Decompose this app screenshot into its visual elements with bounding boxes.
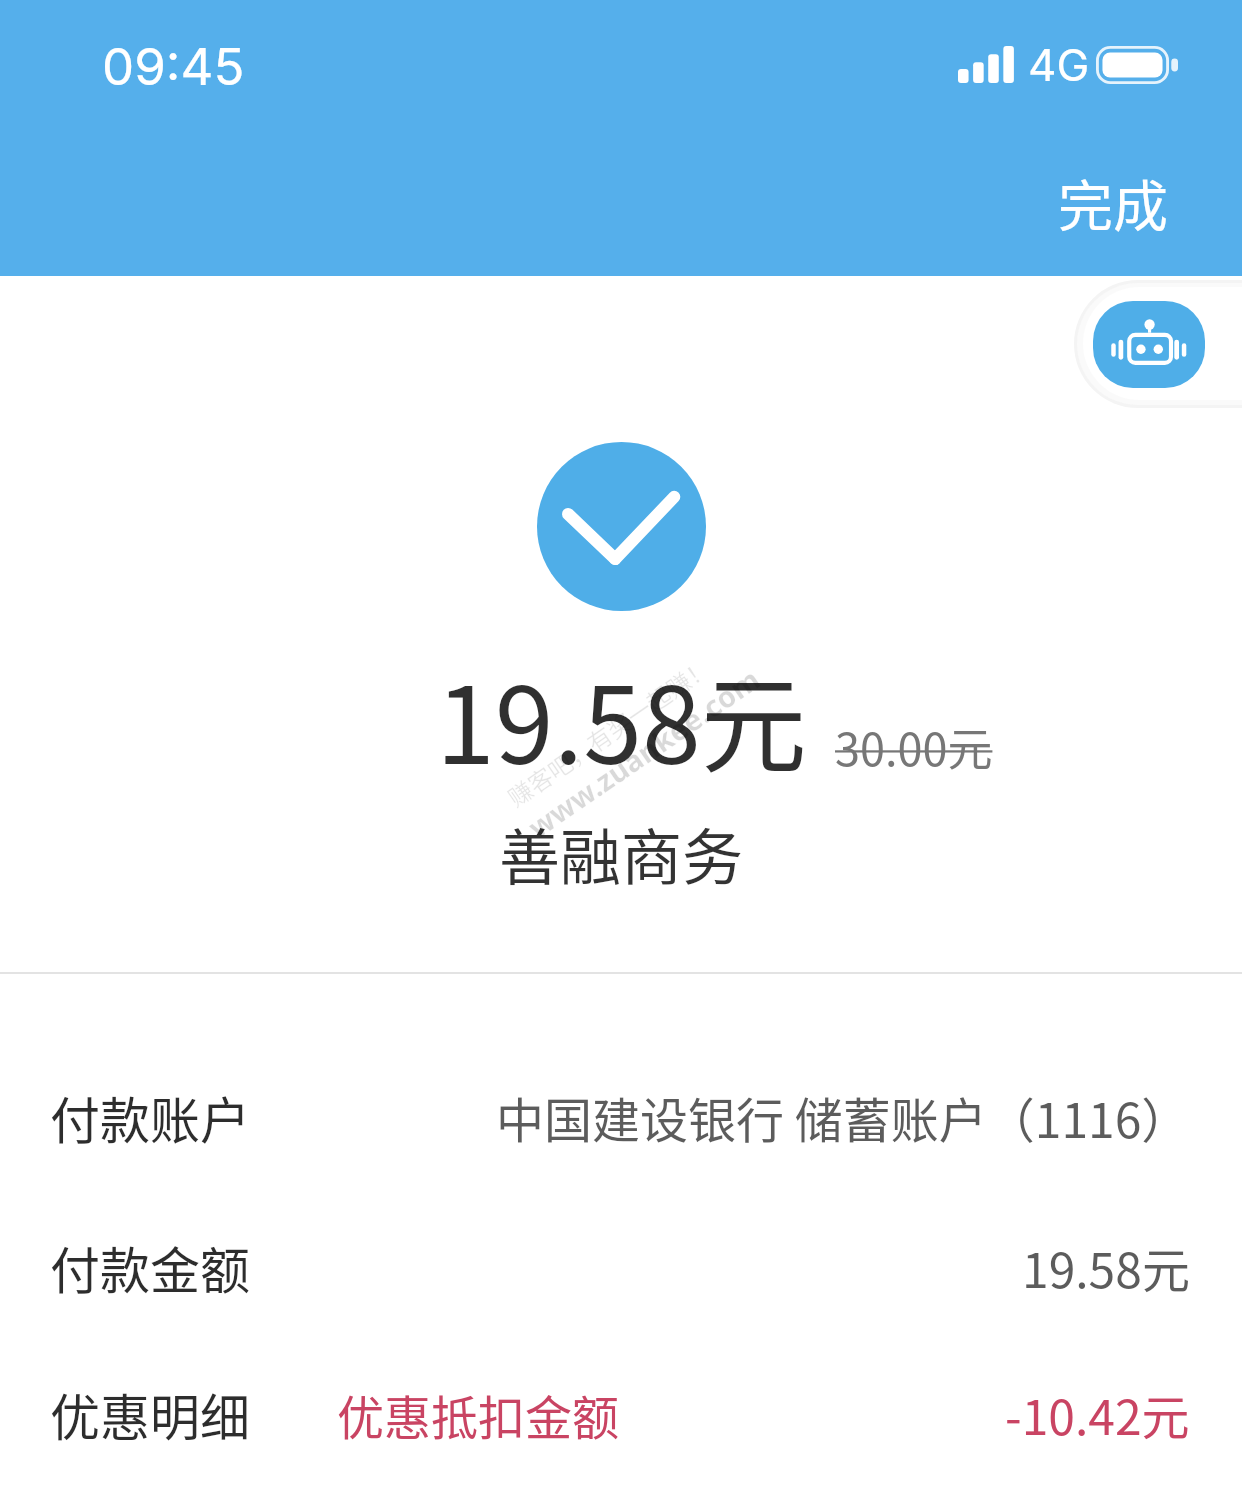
staticText: 19.58元: [1022, 1232, 1190, 1302]
staticText: 09:45: [102, 36, 245, 98]
staticText: www.zuankee.com: [520, 659, 767, 846]
button[interactable]: 付款金额: [0, 1216, 1242, 1318]
staticText: 30.00元: [835, 714, 993, 779]
staticText: 优惠明细: [50, 1378, 250, 1450]
staticText: 完成: [1058, 162, 1169, 242]
button[interactable]: 完成: [1040, 148, 1187, 256]
staticText: 付款金额: [50, 1231, 250, 1303]
button[interactable]: 付款账户: [0, 1066, 1242, 1168]
button[interactable]: 优惠明细: [0, 1363, 1242, 1465]
staticText: -10.42元: [1005, 1379, 1190, 1449]
staticText: 赚客吧，有奖一起赚！: [500, 649, 718, 814]
staticText: 中国建设银行 储蓄账户（1116）: [496, 1082, 1190, 1152]
staticText: 4G: [1028, 38, 1090, 91]
staticText: 优惠抵扣金额: [337, 1380, 619, 1448]
button[interactable]: Chat assistant: [1083, 287, 1242, 400]
staticText: 付款账户: [50, 1081, 250, 1153]
staticText: 19.58元: [436, 641, 807, 794]
staticText: 善融商务: [499, 809, 744, 897]
